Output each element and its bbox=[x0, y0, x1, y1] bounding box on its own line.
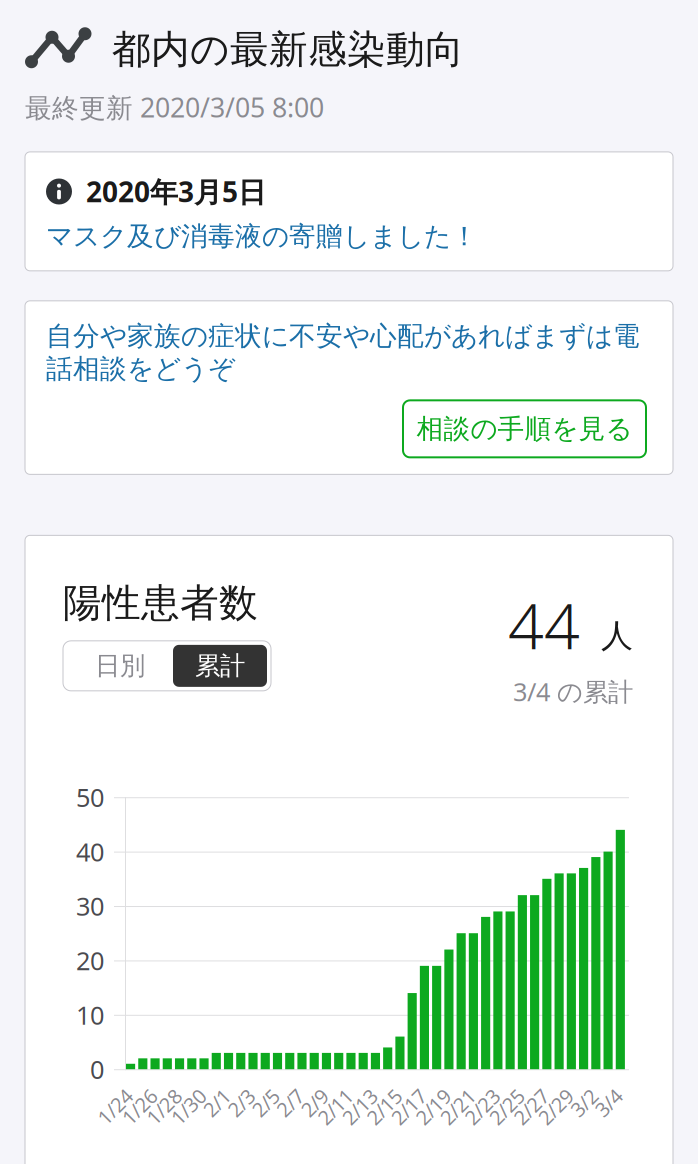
staticText: 10 bbox=[76, 998, 104, 1032]
staticText: 2/23 bbox=[447, 1083, 487, 1110]
staticText: 40 bbox=[76, 835, 104, 868]
staticText: 3/4 の累計 bbox=[513, 675, 633, 708]
staticText: マスク及び消毒液の寄贈しました！ bbox=[46, 220, 478, 253]
staticText: 1/26 bbox=[104, 1083, 144, 1110]
staticText: 人 bbox=[601, 616, 633, 656]
staticText: 2020年3月5日 bbox=[86, 173, 266, 210]
staticText: 2/9 bbox=[286, 1083, 315, 1110]
staticText: 44 bbox=[508, 583, 580, 667]
staticText: 2/29 bbox=[520, 1083, 560, 1110]
staticText: 2/7 bbox=[262, 1083, 291, 1110]
staticText: 陽性患者数 bbox=[63, 579, 258, 627]
staticText: 都内の最新感染動向 bbox=[112, 26, 464, 73]
staticText: 2/5 bbox=[237, 1083, 266, 1110]
button[interactable]: 累計 bbox=[173, 645, 267, 687]
staticText: 自分や家族の症状に不安や心配があればまずは電話相談をどうぞ bbox=[46, 320, 640, 385]
staticText: 2/15 bbox=[349, 1083, 389, 1110]
staticText: 2/1 bbox=[188, 1083, 217, 1110]
staticText: 20 bbox=[76, 944, 104, 977]
staticText: 2/13 bbox=[324, 1083, 364, 1110]
staticText: 30 bbox=[76, 889, 104, 923]
staticText: 2/27 bbox=[496, 1083, 536, 1110]
button[interactable]: 相談の手順を見る bbox=[403, 400, 646, 457]
button[interactable]: マスク及び消毒液の寄贈しました！ bbox=[46, 220, 478, 253]
staticText: 2/11 bbox=[300, 1083, 340, 1110]
staticText: 2/17 bbox=[373, 1083, 413, 1110]
staticText: 1/30 bbox=[153, 1083, 193, 1110]
staticText: 2/25 bbox=[471, 1083, 511, 1110]
staticText: 最終更新 2020/3/05 8:00 bbox=[25, 89, 324, 125]
staticText: 0 bbox=[90, 1052, 104, 1086]
staticText: 3/4 bbox=[580, 1083, 609, 1110]
staticText: 3/2 bbox=[556, 1083, 585, 1110]
staticText: 50 bbox=[76, 780, 104, 814]
staticText: 日別 bbox=[95, 650, 145, 681]
button[interactable]: 日別 bbox=[67, 645, 173, 687]
staticText: 1/28 bbox=[128, 1083, 168, 1110]
staticText: 2/3 bbox=[213, 1083, 242, 1110]
staticText: 相談の手順を見る bbox=[416, 412, 632, 445]
staticText: 1/24 bbox=[80, 1083, 120, 1110]
staticText: 2/21 bbox=[422, 1083, 462, 1110]
staticText: 累計 bbox=[195, 650, 245, 681]
staticText: 2/19 bbox=[398, 1083, 438, 1110]
